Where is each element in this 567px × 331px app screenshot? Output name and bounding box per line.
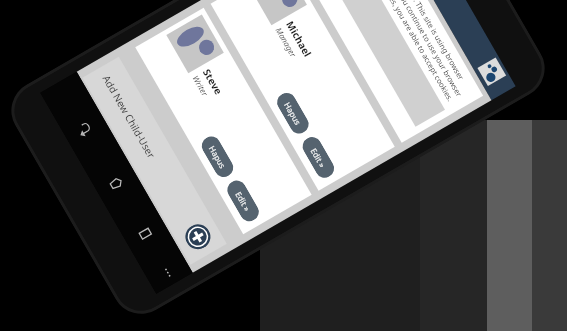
- button[interactable]: Menu: [150, 254, 186, 290]
- button[interactable]: Edit »: [299, 134, 338, 181]
- staticText: Steve: [200, 66, 226, 98]
- button[interactable]: cookies. Please read them. This site is …: [294, 0, 483, 143]
- staticText: Read more »: [329, 0, 366, 1]
- button[interactable]: Edit »: [224, 177, 262, 225]
- staticText: Add New Child-User: [99, 72, 159, 161]
- staticText: Edit »: [309, 146, 329, 170]
- button[interactable]: Steve: [135, 8, 312, 234]
- staticText: Hapus: [207, 144, 229, 171]
- staticText: Michael: [283, 18, 315, 60]
- button[interactable]: Back: [67, 110, 103, 146]
- button[interactable]: Read more »: [314, 0, 445, 127]
- button[interactable]: Add new child user: [181, 220, 215, 254]
- button[interactable]: Add New Child-User: [82, 57, 227, 265]
- staticText: Manager: [274, 25, 300, 59]
- staticText: Edit »: [233, 189, 253, 213]
- button[interactable]: Home: [99, 165, 134, 200]
- button[interactable]: Hapus: [198, 133, 237, 180]
- button[interactable]: Hapus: [274, 89, 312, 137]
- button[interactable]: Michael: [211, 0, 395, 191]
- button[interactable]: [375, 0, 516, 100]
- button[interactable]: Recents: [128, 215, 163, 251]
- staticText: Hapus: [282, 100, 304, 127]
- staticText: Writer: [190, 73, 211, 98]
- staticText: cookies. Please read them. This site is …: [348, 0, 475, 107]
